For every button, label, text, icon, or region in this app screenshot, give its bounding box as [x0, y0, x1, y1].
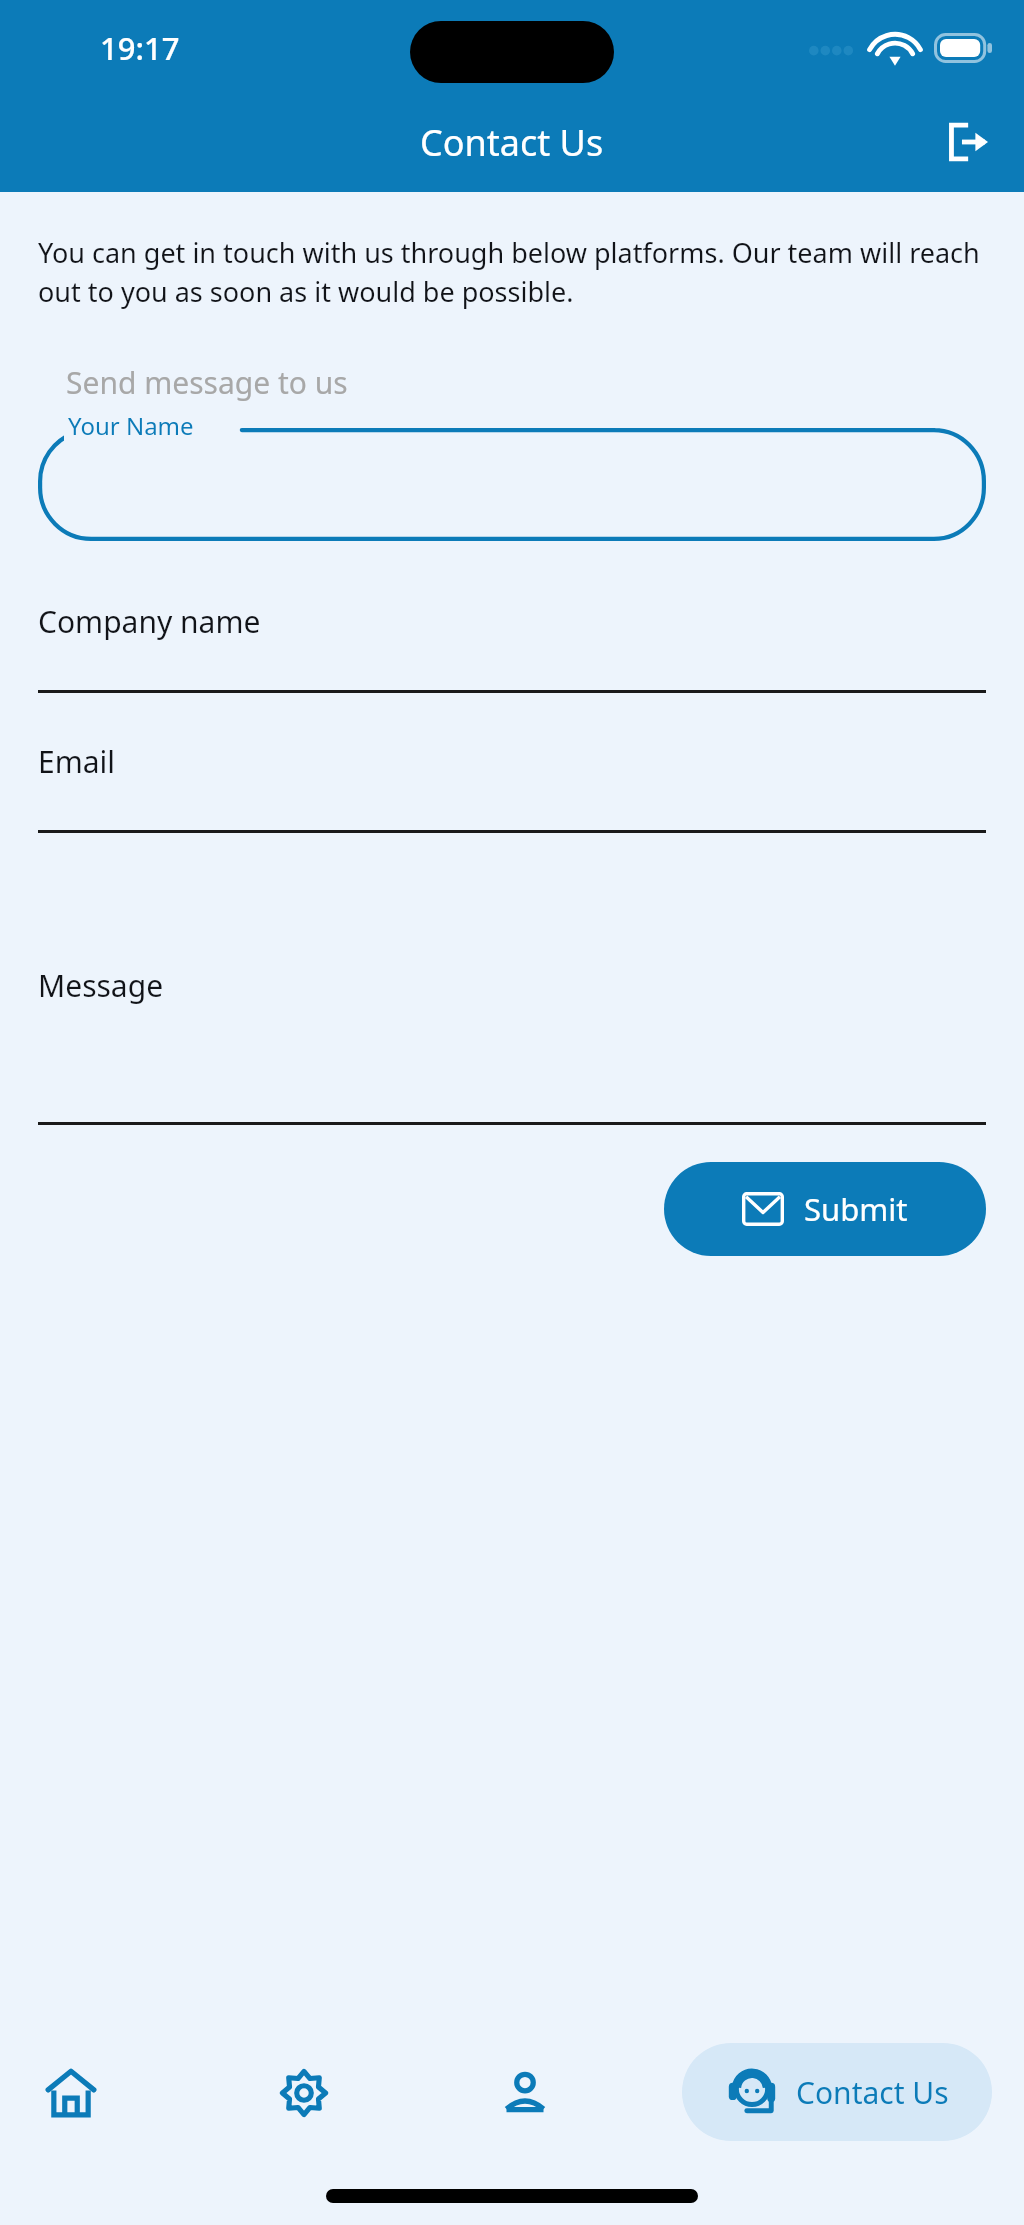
- staticText: Your Name: [68, 409, 194, 442]
- staticText: Email: [38, 741, 116, 782]
- button[interactable]: Your Name: [38, 425, 986, 541]
- button[interactable]: Profile: [476, 2043, 574, 2143]
- button[interactable]: Email: [38, 737, 986, 833]
- button[interactable]: Log out: [936, 111, 998, 173]
- staticText: Message: [38, 965, 164, 1006]
- staticText: 19:17: [100, 27, 180, 69]
- button[interactable]: Submit: [664, 1162, 986, 1256]
- button[interactable]: Home: [22, 2043, 120, 2143]
- staticText: Submit: [804, 1188, 908, 1230]
- button[interactable]: Settings: [255, 2043, 353, 2143]
- staticText: Contact Us: [420, 118, 604, 167]
- staticText: Send message to us: [66, 362, 348, 403]
- button[interactable]: Contact Us: [682, 2043, 992, 2141]
- staticText: You can get in touch with us through bel…: [38, 234, 986, 310]
- staticText: Contact Us: [796, 2072, 949, 2113]
- staticText: Company name: [38, 601, 261, 642]
- button[interactable]: Message: [38, 877, 986, 1125]
- button[interactable]: Company name: [38, 597, 986, 693]
